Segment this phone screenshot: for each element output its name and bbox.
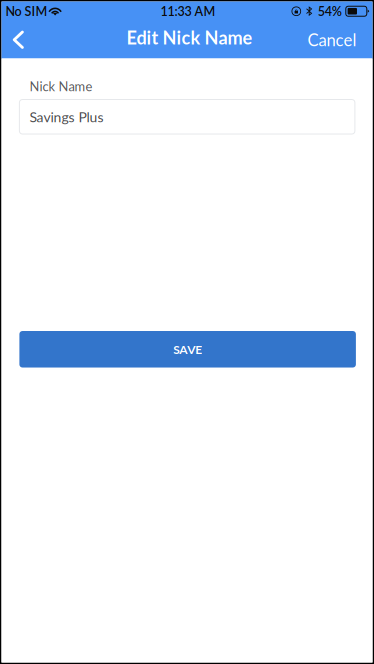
staticText: Savings Plus [29, 108, 103, 125]
staticText: SAVE [173, 342, 202, 356]
button[interactable]: Cancel [307, 21, 372, 58]
button[interactable]: SAVE [19, 331, 356, 367]
staticText: No SIM [5, 4, 47, 19]
staticText: Nick Name [29, 78, 92, 94]
staticText: 54% [318, 4, 342, 19]
staticText: Edit Nick Name [126, 27, 252, 48]
button[interactable]: Back [1, 21, 40, 58]
staticText: Cancel [307, 30, 356, 50]
staticText: 11:33 AM [160, 4, 215, 19]
